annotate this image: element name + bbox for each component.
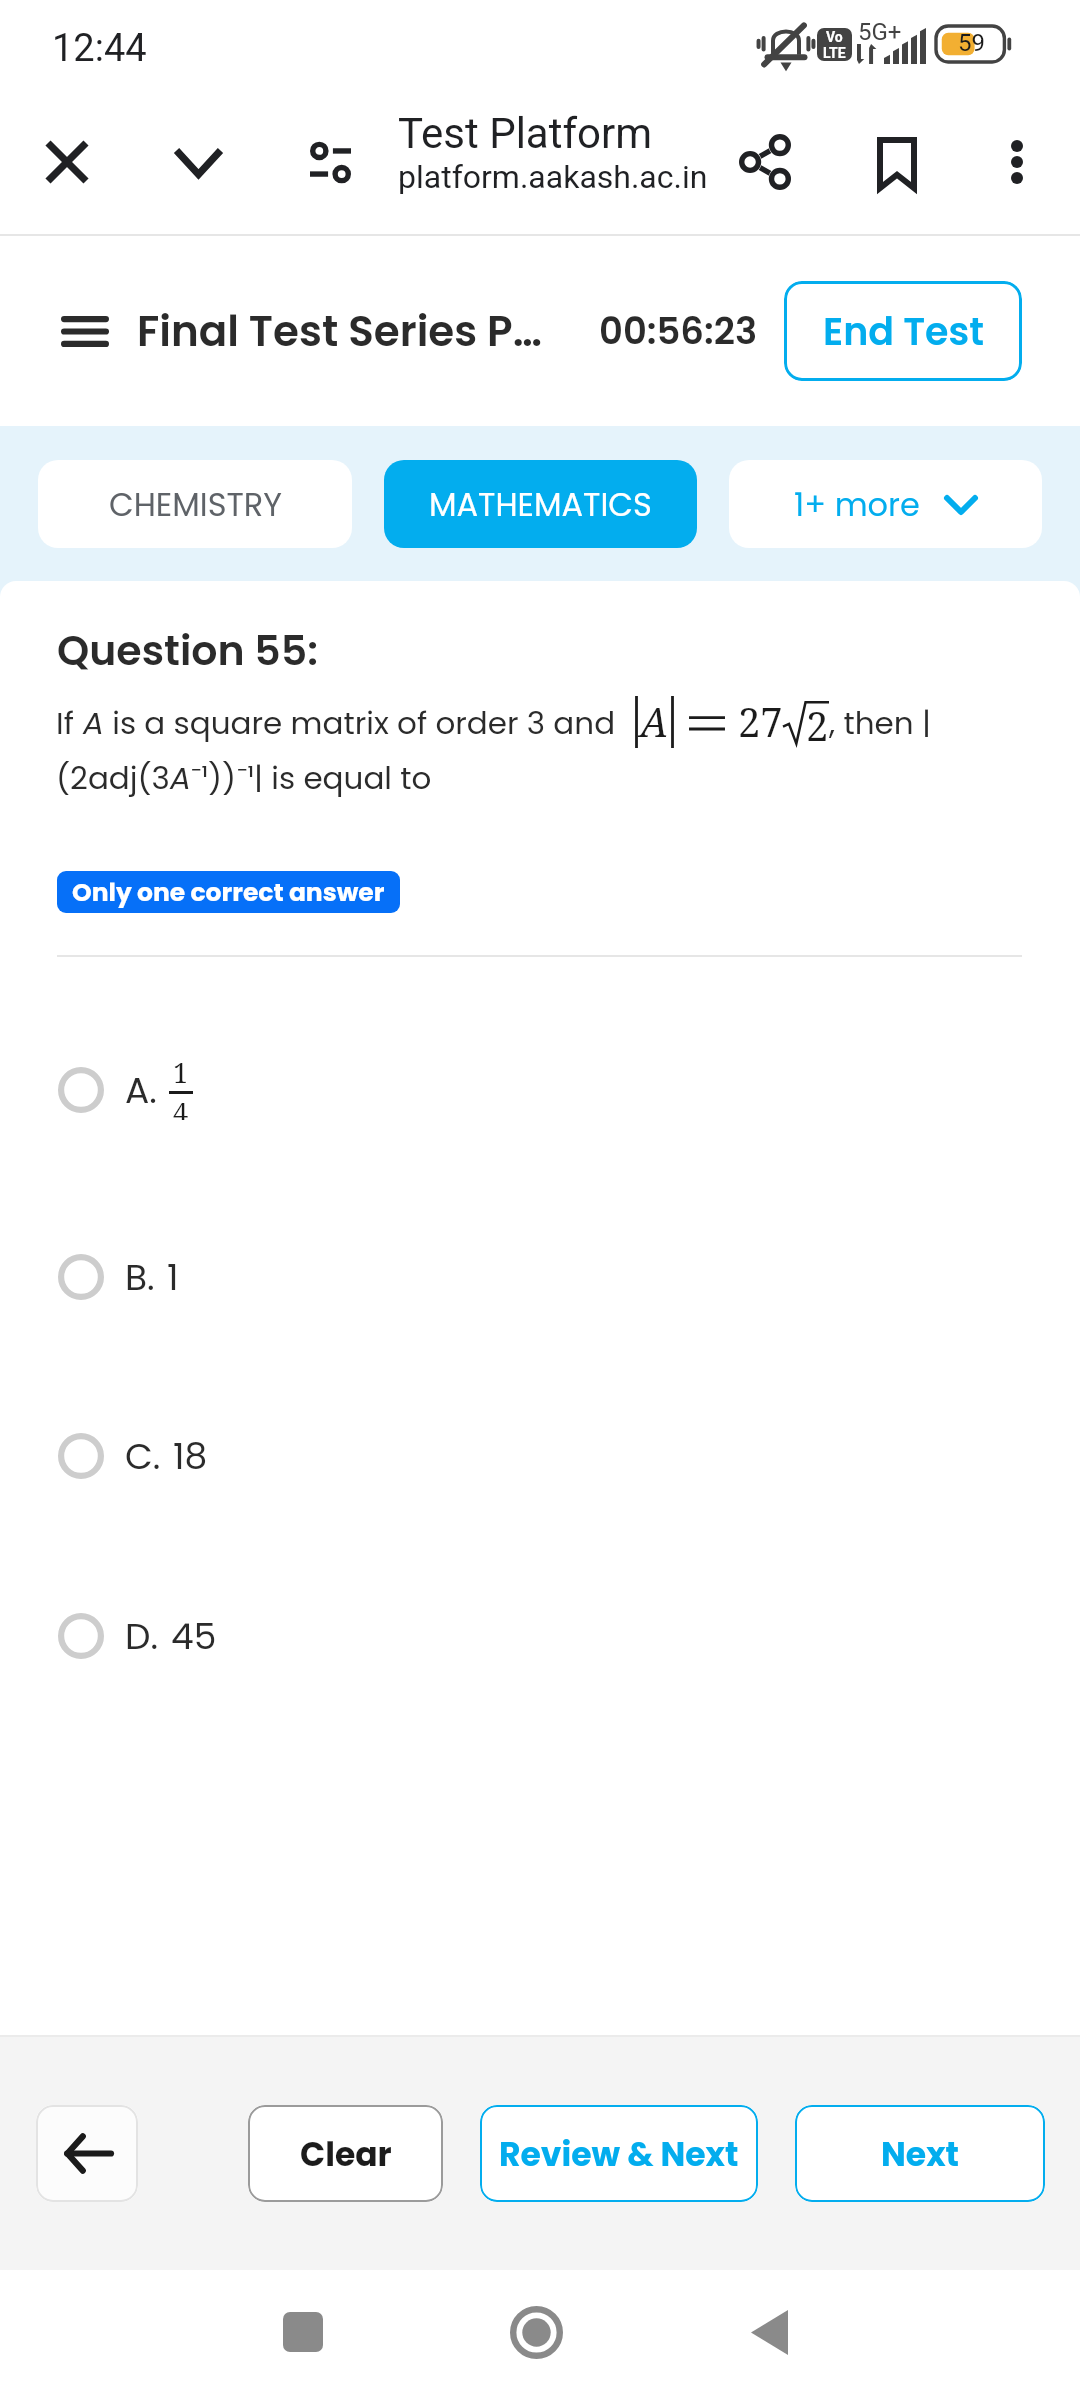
staticText: Clear — [300, 2131, 392, 2177]
staticText: MATHEMATICS — [429, 482, 652, 527]
button[interactable]: Previous question — [36, 2105, 138, 2202]
button[interactable]: 1+ more — [729, 460, 1042, 548]
staticText: 12:44 — [52, 26, 147, 71]
staticText: A — [640, 694, 669, 748]
button[interactable]: Page info — [278, 90, 382, 234]
staticText: 59 — [958, 29, 985, 57]
staticText: Next — [881, 2131, 959, 2177]
staticText: 27 — [738, 694, 783, 748]
button[interactable]: Next — [795, 2105, 1045, 2202]
button[interactable]: More options — [972, 90, 1062, 234]
staticText: 18 — [173, 1431, 208, 1481]
staticText: Review & Next — [499, 2131, 739, 2177]
button[interactable]: Home — [466, 2267, 606, 2397]
staticText: (2adj(3 — [56, 756, 170, 799]
staticText: 00:56:23 — [599, 305, 758, 357]
button[interactable]: Clear — [248, 2105, 443, 2202]
staticText: Final Test Series P… — [137, 302, 542, 361]
staticText: Only one correct answer — [72, 875, 385, 910]
staticText: A. — [125, 1065, 157, 1115]
button[interactable]: End Test — [784, 281, 1022, 381]
staticText: A — [170, 756, 191, 799]
staticText: Test Platform — [398, 109, 653, 158]
staticText: , then | — [829, 701, 931, 744]
button[interactable]: Back — [699, 2267, 839, 2397]
staticText: ⁻¹ — [191, 755, 208, 799]
button[interactable]: D. — [58, 1603, 1080, 1669]
staticText: 4 — [173, 1094, 189, 1120]
button[interactable]: A. — [58, 1057, 1080, 1123]
staticText: Vo — [826, 29, 843, 45]
staticText: is a square matrix of order 3 and — [104, 701, 624, 744]
button[interactable]: B. — [58, 1244, 1080, 1310]
staticText: If — [56, 701, 83, 744]
button[interactable]: Recents — [233, 2267, 373, 2397]
staticText: ⁻¹ — [237, 755, 254, 799]
staticText: 1 — [167, 1252, 179, 1302]
staticText: 45 — [171, 1611, 217, 1661]
staticText: End Test — [823, 305, 984, 358]
button[interactable]: Share — [713, 90, 817, 234]
staticText: Question 55: — [57, 622, 318, 679]
staticText: A — [83, 701, 104, 744]
staticText: | is equal to — [254, 756, 432, 799]
button[interactable]: CHEMISTRY — [38, 460, 352, 548]
staticText: )) — [208, 756, 237, 799]
button[interactable]: Menu — [40, 283, 130, 379]
button[interactable]: Review & Next — [480, 2105, 758, 2202]
staticText: platform.aakash.ac.in — [398, 158, 708, 196]
staticText: 2 — [806, 698, 829, 752]
button[interactable]: Minimize — [146, 90, 250, 234]
button[interactable]: Close — [15, 90, 119, 234]
staticText: CHEMISTRY — [109, 482, 282, 527]
staticText: 5G+ — [858, 18, 902, 46]
staticText: 1+ more — [794, 482, 920, 527]
staticText: B. — [125, 1252, 155, 1302]
staticText: C. — [125, 1431, 161, 1481]
staticText: D. — [125, 1611, 159, 1661]
button[interactable]: Bookmark — [845, 90, 949, 234]
button[interactable]: C. — [58, 1423, 1080, 1489]
staticText: 1 — [173, 1054, 189, 1091]
staticText: LTE — [823, 45, 846, 61]
button[interactable]: MATHEMATICS — [384, 460, 697, 548]
